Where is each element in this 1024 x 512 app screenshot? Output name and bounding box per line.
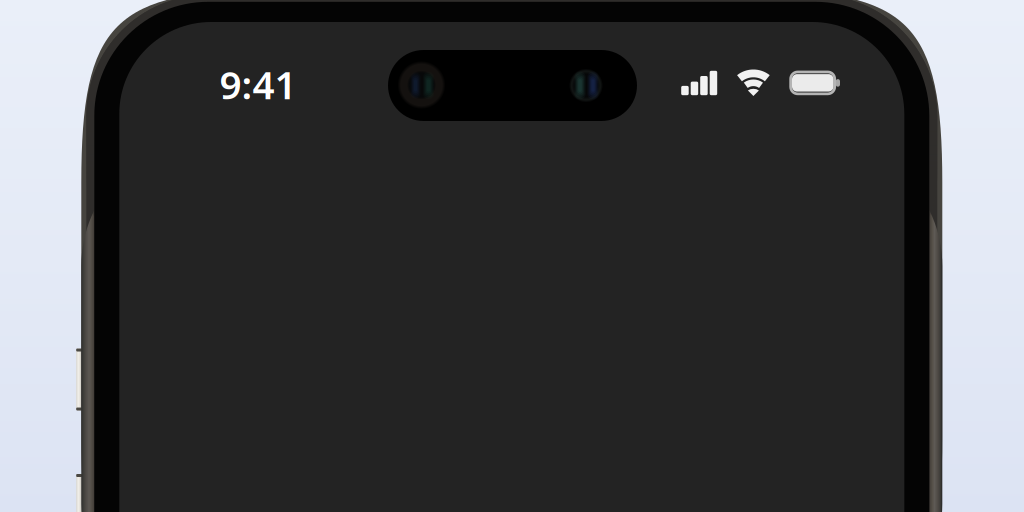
staticText: 9:41: [219, 58, 296, 110]
